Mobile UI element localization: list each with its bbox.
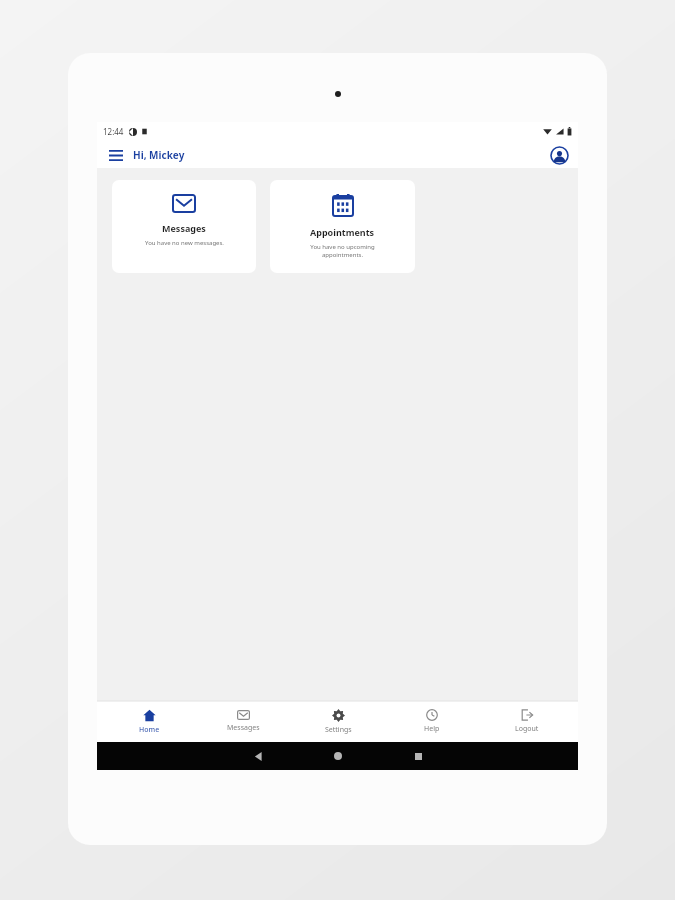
button[interactable]: Open navigation menu — [105, 144, 185, 166]
button[interactable]: Messages — [112, 180, 256, 273]
staticText: 12:44 — [103, 126, 124, 137]
button[interactable]: Messages — [200, 701, 286, 742]
button[interactable]: Appointments — [270, 180, 415, 273]
staticText: Appointments — [310, 226, 375, 238]
button[interactable]: Back — [240, 742, 276, 770]
staticText: Settings — [325, 725, 352, 735]
staticText: You have no new messages. — [145, 239, 224, 247]
button[interactable]: Home — [106, 701, 192, 742]
staticText: Logout — [515, 724, 539, 734]
button[interactable]: Account profile — [547, 143, 571, 167]
staticText: Messages — [227, 723, 260, 733]
staticText: Messages — [162, 222, 206, 234]
staticText: Home — [139, 725, 160, 735]
button[interactable]: Home — [320, 742, 356, 770]
staticText: Help — [424, 724, 440, 734]
button[interactable]: Settings — [295, 701, 381, 742]
button[interactable]: Logout — [484, 701, 570, 742]
other: Open navigation menu — [105, 144, 127, 166]
button[interactable]: Recent apps — [400, 742, 436, 770]
staticText: You have no upcoming appointments. — [310, 243, 375, 259]
button[interactable]: Help — [389, 701, 475, 742]
staticText: Hi, Mickey — [133, 148, 185, 162]
